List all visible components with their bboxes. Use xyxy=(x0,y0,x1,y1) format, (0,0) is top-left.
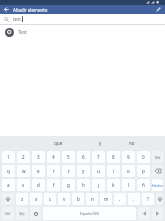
staticText: 3 xyxy=(37,154,40,160)
button[interactable]: o xyxy=(122,165,135,177)
button[interactable]: 1 xyxy=(2,151,15,163)
staticText: Del xyxy=(155,155,161,160)
button[interactable]: j xyxy=(92,179,105,191)
button[interactable]: u xyxy=(92,165,105,177)
staticText: 0 xyxy=(142,154,145,160)
staticText: 5 xyxy=(67,154,70,160)
staticText: Hecho xyxy=(152,183,163,188)
button[interactable]: m xyxy=(100,193,112,205)
staticText: b xyxy=(77,196,80,202)
button[interactable] xyxy=(152,165,163,177)
staticText: Test xyxy=(18,29,27,35)
staticText: p xyxy=(142,168,145,174)
button[interactable]: ? xyxy=(142,193,154,205)
staticText: Añadir elemento xyxy=(13,7,48,13)
staticText: Ctrl xyxy=(5,212,11,216)
button[interactable]: c xyxy=(44,193,56,205)
button[interactable]: test xyxy=(0,14,165,24)
staticText: k xyxy=(112,182,115,188)
button[interactable]: x xyxy=(30,193,42,205)
button[interactable]: t xyxy=(62,165,75,177)
button[interactable]: s xyxy=(17,179,30,191)
button[interactable] xyxy=(30,207,41,220)
staticText: o xyxy=(127,168,130,174)
button[interactable]: Español (ES) xyxy=(43,207,136,220)
staticText: c xyxy=(49,196,52,202)
staticText: 2 xyxy=(22,154,25,160)
staticText: x xyxy=(35,196,38,202)
button[interactable]: 9 xyxy=(122,151,135,163)
button[interactable]: Test xyxy=(0,25,165,39)
staticText: j xyxy=(98,182,100,188)
staticText: , xyxy=(119,196,121,202)
button[interactable]: d xyxy=(32,179,45,191)
button[interactable]: , xyxy=(114,193,126,205)
staticText: q xyxy=(7,168,10,174)
staticText: w xyxy=(22,168,26,174)
button[interactable]: y xyxy=(77,165,90,177)
button[interactable] xyxy=(152,207,163,220)
staticText: e xyxy=(37,168,40,174)
staticText: z xyxy=(21,196,24,202)
button[interactable]: . xyxy=(128,193,140,205)
button[interactable]: Ctrl xyxy=(2,207,14,220)
staticText: h xyxy=(82,182,85,188)
button[interactable]: n xyxy=(86,193,98,205)
staticText: u xyxy=(97,168,100,174)
staticText: no xyxy=(129,140,135,146)
staticText: test xyxy=(13,16,21,22)
staticText: i xyxy=(113,168,115,174)
staticText: ñ xyxy=(142,182,145,188)
button[interactable]: k xyxy=(107,179,120,191)
button[interactable] xyxy=(3,6,10,13)
button[interactable] xyxy=(2,193,14,205)
button[interactable]: 4 xyxy=(47,151,60,163)
button[interactable]: w xyxy=(17,165,30,177)
staticText: y xyxy=(82,168,85,174)
staticText: que xyxy=(54,140,63,146)
button[interactable]: b xyxy=(72,193,84,205)
staticText: 9 xyxy=(127,154,130,160)
button[interactable]: e xyxy=(32,165,45,177)
staticText: y xyxy=(99,140,102,146)
staticText: f xyxy=(53,182,55,188)
staticText: ? xyxy=(147,196,149,202)
button[interactable]: 8 xyxy=(107,151,120,163)
button[interactable]: l xyxy=(122,179,135,191)
button[interactable] xyxy=(156,193,163,205)
button[interactable]: z xyxy=(16,193,28,205)
button[interactable]: g xyxy=(62,179,75,191)
button[interactable]: 2 xyxy=(17,151,30,163)
button[interactable]: f xyxy=(47,179,60,191)
staticText: a xyxy=(7,182,10,188)
button[interactable]: Hecho xyxy=(152,179,163,191)
button[interactable]: !#☺ xyxy=(16,207,28,220)
button[interactable]: h xyxy=(77,179,90,191)
staticText: v xyxy=(63,196,66,202)
staticText: t xyxy=(68,168,70,174)
button[interactable]: v xyxy=(58,193,70,205)
button[interactable]: p xyxy=(137,165,150,177)
button[interactable]: Del xyxy=(152,151,163,163)
staticText: d xyxy=(37,182,40,188)
staticText: 1 xyxy=(7,154,10,160)
staticText: 8 xyxy=(112,154,115,160)
button[interactable]: i xyxy=(107,165,120,177)
button[interactable]: 3 xyxy=(32,151,45,163)
staticText: m xyxy=(104,196,109,202)
button[interactable] xyxy=(138,207,150,220)
button[interactable]: 5 xyxy=(62,151,75,163)
staticText: r xyxy=(53,168,55,174)
button[interactable]: 7 xyxy=(92,151,105,163)
button[interactable] xyxy=(154,5,163,14)
staticText: . xyxy=(133,196,135,202)
button[interactable]: q xyxy=(2,165,15,177)
button[interactable]: 6 xyxy=(77,151,90,163)
button[interactable]: 0 xyxy=(137,151,150,163)
button[interactable]: r xyxy=(47,165,60,177)
staticText: 4 xyxy=(52,154,55,160)
button[interactable]: ñ xyxy=(137,179,150,191)
button[interactable]: a xyxy=(2,179,15,191)
staticText: 6 xyxy=(82,154,85,160)
staticText: !#☺ xyxy=(19,212,25,216)
